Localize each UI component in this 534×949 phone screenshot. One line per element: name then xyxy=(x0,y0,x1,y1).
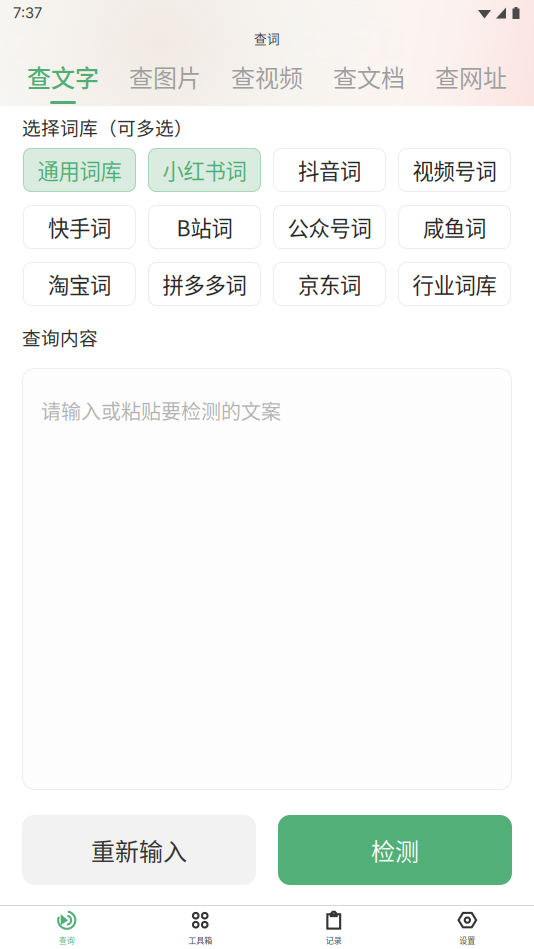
button[interactable]: 重新输入 xyxy=(22,815,256,885)
button[interactable]: 查网址 xyxy=(420,59,522,104)
button[interactable]: 查视频 xyxy=(216,59,318,104)
staticText: 记录 xyxy=(326,934,342,946)
staticText: 通用词库 xyxy=(37,155,121,185)
staticText: 选择词库（可多选） xyxy=(22,113,193,140)
staticText: 查文字 xyxy=(27,59,99,94)
button[interactable]: 查文档 xyxy=(318,59,420,104)
button[interactable]: 咸鱼词 xyxy=(398,205,511,249)
staticText: 拼多多词 xyxy=(162,269,246,299)
button[interactable]: 京东词 xyxy=(273,262,386,306)
button[interactable]: B站词 xyxy=(148,205,261,249)
button[interactable]: 抖音词 xyxy=(273,148,386,192)
staticText: 重新输入 xyxy=(91,833,187,867)
staticText: 视频号词 xyxy=(412,155,496,185)
button[interactable]: 工具箱 xyxy=(133,908,267,946)
button[interactable]: 检测 xyxy=(278,815,512,885)
staticText: 检测 xyxy=(371,833,419,867)
staticText: 查网址 xyxy=(435,59,507,94)
staticText: 查图片 xyxy=(129,59,201,94)
button[interactable]: 查图片 xyxy=(114,59,216,104)
staticText: 咸鱼词 xyxy=(423,212,486,242)
staticText: 查询内容 xyxy=(22,323,98,350)
button[interactable]: 查询 xyxy=(0,908,133,946)
staticText: 查词 xyxy=(254,29,280,47)
staticText: B站词 xyxy=(176,212,232,242)
button[interactable]: 通用词库 xyxy=(23,148,136,192)
staticText: 公众号词 xyxy=(287,212,371,242)
button[interactable]: 行业词库 xyxy=(398,262,511,306)
staticText: 查询 xyxy=(59,934,75,946)
staticText: 7:37 xyxy=(13,4,42,22)
staticText: 行业词库 xyxy=(412,269,496,299)
button[interactable]: 公众号词 xyxy=(273,205,386,249)
staticText: 淘宝词 xyxy=(48,269,111,299)
staticText: 工具箱 xyxy=(188,934,212,946)
staticText: 京东词 xyxy=(298,269,361,299)
staticText: 查文档 xyxy=(333,59,405,94)
button[interactable]: 记录 xyxy=(267,908,400,946)
staticText: 查视频 xyxy=(231,59,303,94)
staticText: 快手词 xyxy=(48,212,111,242)
staticText: 小红书词 xyxy=(162,155,246,185)
button[interactable]: 设置 xyxy=(400,908,534,946)
button[interactable]: 淘宝词 xyxy=(23,262,136,306)
button[interactable]: 请输入或粘贴要检测的文案 xyxy=(22,368,512,790)
staticText: 请输入或粘贴要检测的文案 xyxy=(41,396,281,425)
button[interactable]: 拼多多词 xyxy=(148,262,261,306)
button[interactable]: 小红书词 xyxy=(148,148,261,192)
staticText: 设置 xyxy=(459,934,475,946)
button[interactable]: 快手词 xyxy=(23,205,136,249)
staticText: 抖音词 xyxy=(298,155,361,185)
button[interactable]: 查文字 xyxy=(12,59,114,104)
button[interactable]: 视频号词 xyxy=(398,148,511,192)
